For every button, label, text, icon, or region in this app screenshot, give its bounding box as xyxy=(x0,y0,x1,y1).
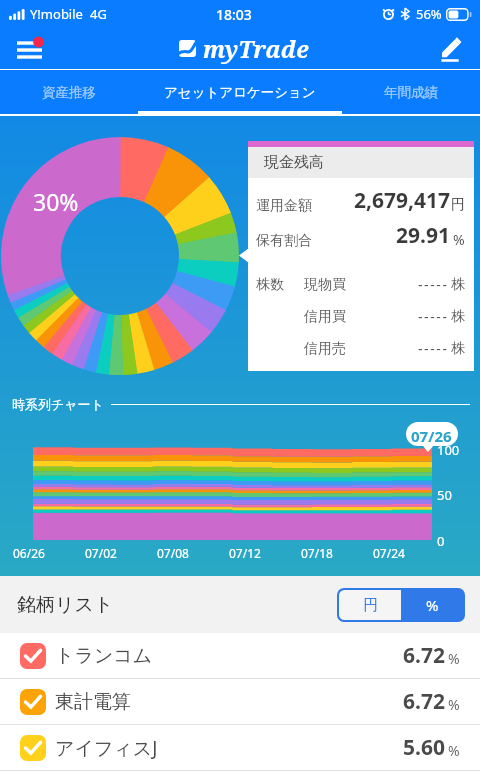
staticText: 06/26 xyxy=(13,545,85,561)
staticText: 4G xyxy=(90,5,107,23)
staticText: 年間成績 xyxy=(384,84,438,101)
staticText: % xyxy=(448,649,460,668)
staticText: 29.91 xyxy=(396,221,450,250)
staticText: 時系列チャート xyxy=(12,396,104,412)
staticText: 現金残高 xyxy=(264,153,324,172)
staticText: % xyxy=(453,230,465,249)
staticText: 保有割合 xyxy=(256,232,312,250)
staticText: 2,679,417 xyxy=(354,186,451,215)
button[interactable]: 円 xyxy=(339,590,401,620)
staticText: Y!mobile xyxy=(30,5,83,23)
staticText: 07/02 xyxy=(85,545,157,561)
staticText: 07/18 xyxy=(301,545,373,561)
staticText: 100 xyxy=(437,441,460,459)
button[interactable]: アセットアロケーション xyxy=(138,70,342,115)
staticText: 07/12 xyxy=(229,545,301,561)
staticText: 運用金額 xyxy=(256,197,312,215)
button[interactable]: アイフィスJ xyxy=(0,725,480,770)
staticText: ----- xyxy=(418,307,449,326)
staticText: 5.60 xyxy=(403,733,445,762)
staticText: 信用買 xyxy=(304,308,346,326)
button[interactable]: トランコム xyxy=(0,633,480,678)
staticText: myTrade xyxy=(203,33,309,64)
staticText: ----- xyxy=(418,339,449,358)
button[interactable]: 資産推移 xyxy=(0,70,138,115)
staticText: 信用売 xyxy=(304,340,346,358)
staticText: 資産推移 xyxy=(42,84,96,101)
staticText: 円 xyxy=(363,596,378,615)
staticText: 0 xyxy=(437,532,445,550)
button[interactable]: Edit xyxy=(430,28,472,69)
staticText: 07/24 xyxy=(373,545,445,561)
staticText: 株数 xyxy=(256,276,284,294)
staticText: 株 xyxy=(451,308,465,326)
staticText: アイフィスJ xyxy=(55,735,158,761)
staticText: 6.72 xyxy=(403,641,445,670)
staticText: 56% xyxy=(416,5,442,23)
staticText: 株 xyxy=(451,276,465,294)
button[interactable]: 年間成績 xyxy=(342,70,480,115)
staticText: 07/26 xyxy=(411,426,452,446)
staticText: % xyxy=(448,741,460,760)
staticText: 東計電算 xyxy=(55,690,131,714)
staticText: % xyxy=(448,695,460,714)
staticText: 円 xyxy=(451,196,465,214)
staticText: 18:03 xyxy=(216,5,252,24)
staticText: 株 xyxy=(451,340,465,358)
staticText: 07/08 xyxy=(157,545,229,561)
staticText: 6.72 xyxy=(403,687,445,716)
staticText: 現物買 xyxy=(304,276,346,294)
staticText: 30% xyxy=(33,186,79,217)
staticText: アセットアロケーション xyxy=(164,84,316,101)
staticText: % xyxy=(426,595,439,615)
staticText: 銘柄リスト xyxy=(17,593,114,617)
button[interactable]: 東計電算 xyxy=(0,679,480,724)
staticText: トランコム xyxy=(55,644,153,668)
staticText: ----- xyxy=(418,275,449,294)
staticText: 50 xyxy=(437,486,452,504)
button[interactable]: Menu xyxy=(8,28,50,69)
button[interactable]: % xyxy=(401,590,463,620)
